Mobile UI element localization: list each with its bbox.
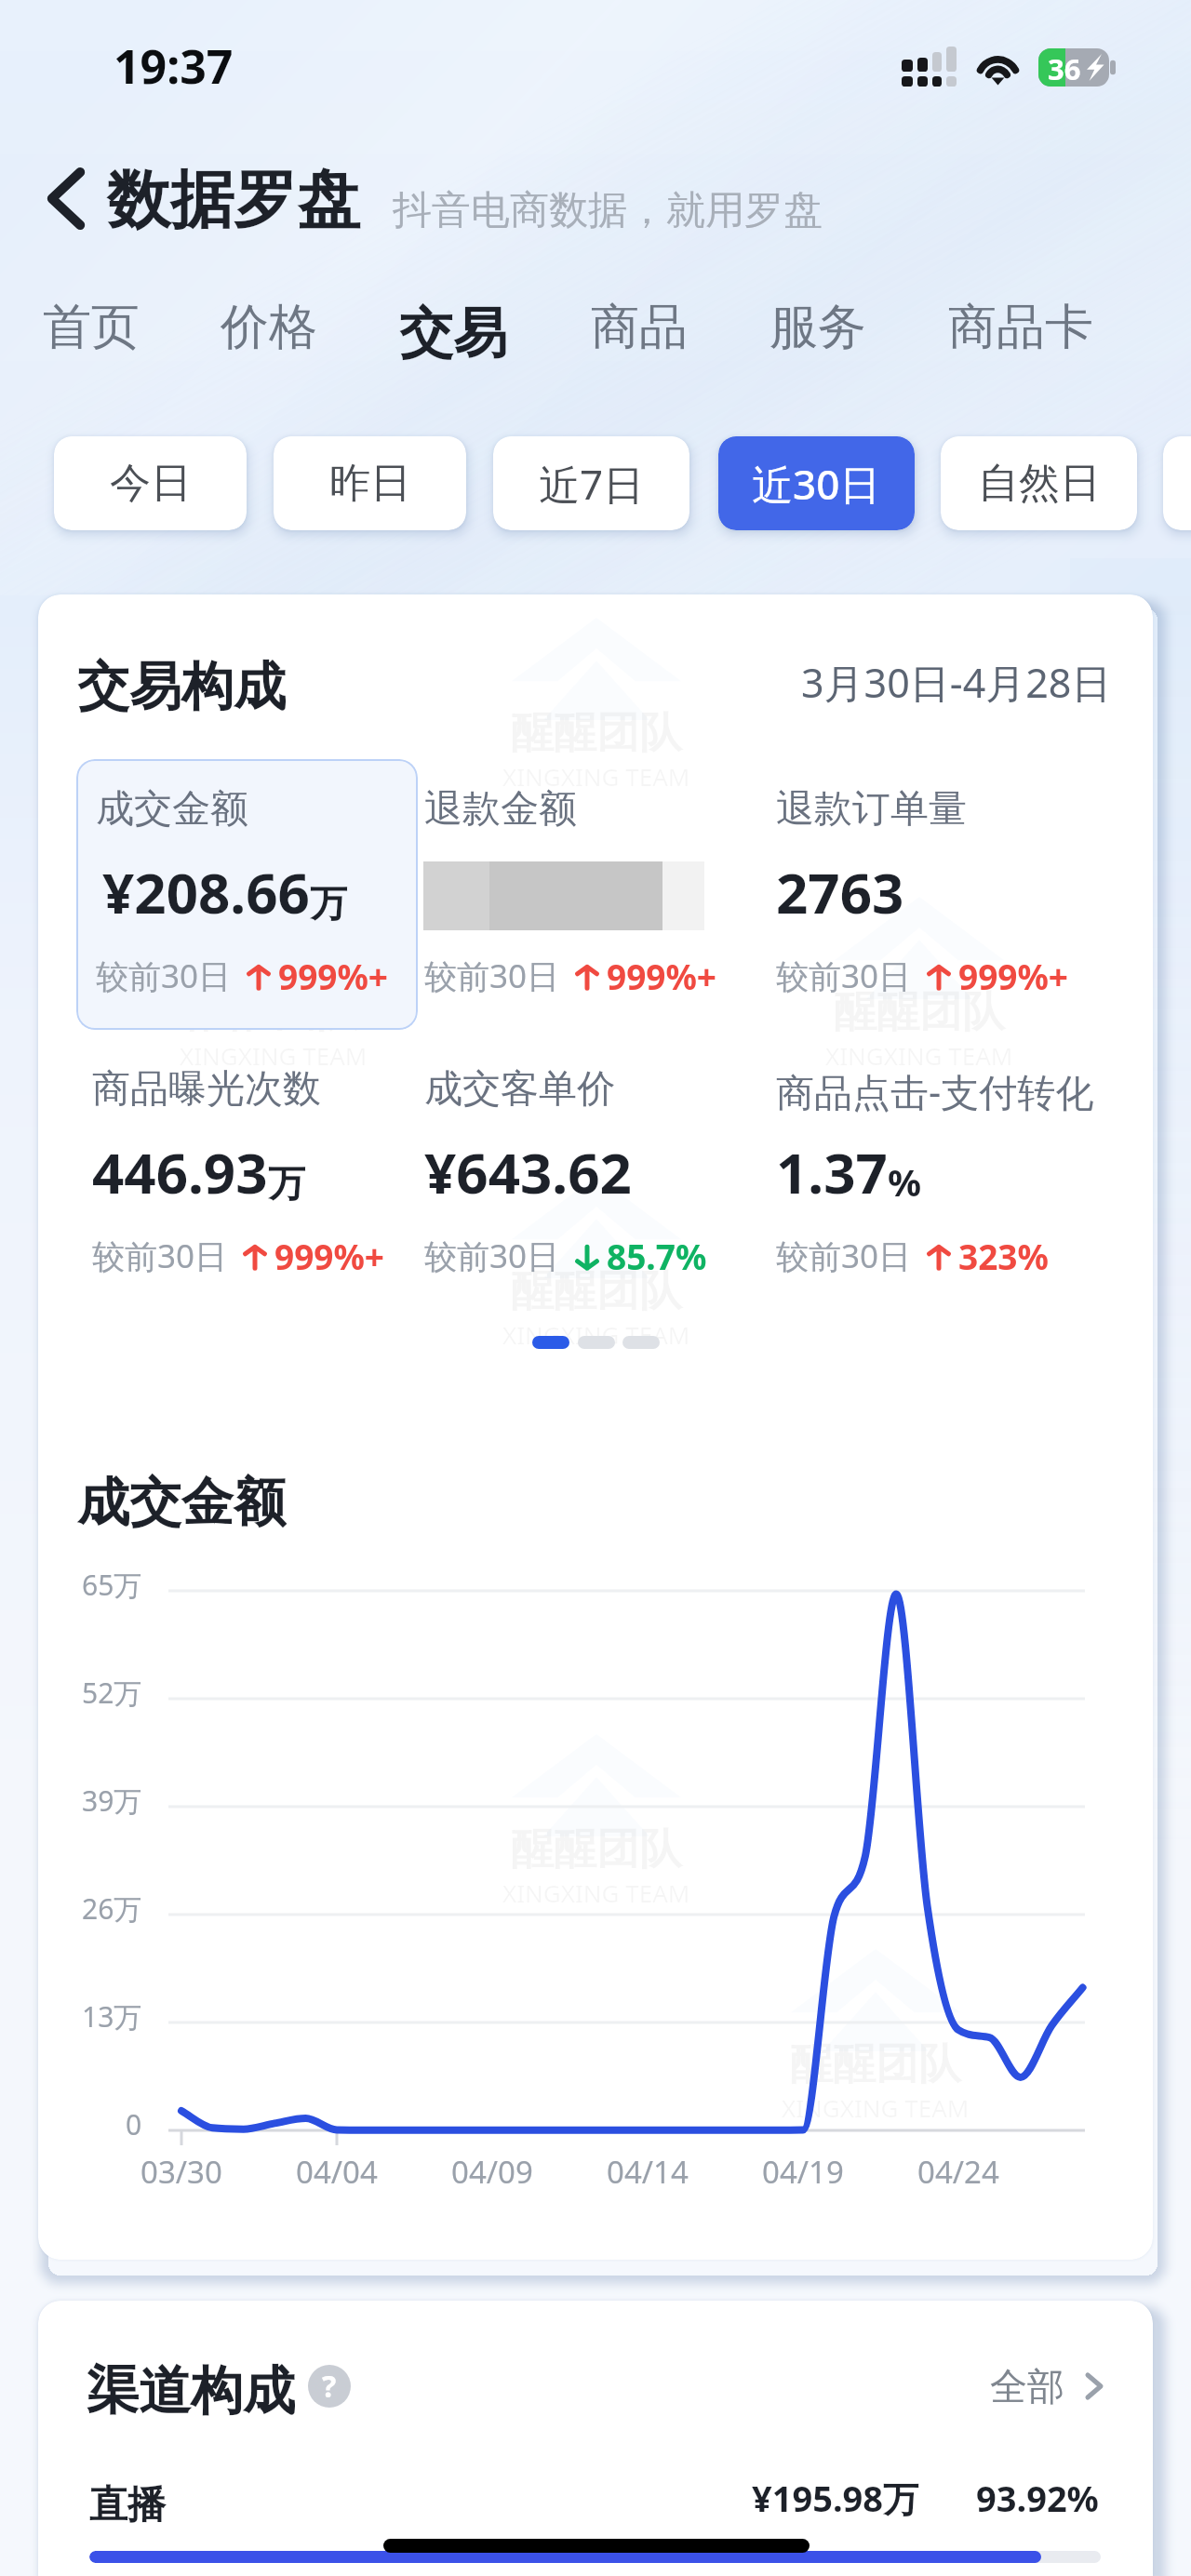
staticText: 2763	[776, 854, 904, 930]
staticText: 85.7%	[607, 1233, 707, 1279]
button[interactable]: 今日	[54, 436, 247, 530]
staticText: 商品曝光次数	[92, 1065, 321, 1114]
staticText: 999%+	[958, 953, 1069, 999]
staticText: 退款金额	[424, 785, 577, 834]
staticText: 渠道构成	[87, 2358, 295, 2424]
staticText: 较前30日	[424, 954, 560, 998]
staticText: 直播	[89, 2481, 166, 2529]
staticText: 价格	[221, 297, 317, 358]
staticText: 52万	[82, 1674, 142, 1712]
staticText: 04/04	[296, 2151, 378, 2193]
staticText: 323%	[958, 1233, 1049, 1279]
staticText: 交易	[399, 300, 507, 367]
staticText: 999%+	[274, 1233, 385, 1279]
button[interactable]: 交易	[399, 300, 507, 367]
staticText: 较前30日	[96, 954, 232, 998]
button[interactable]: 服务	[769, 297, 866, 358]
staticText: 13万	[82, 1997, 142, 2035]
staticText: 醒醒团队	[511, 1822, 682, 1876]
staticText: 退款订单量	[776, 785, 967, 834]
staticText: XINGXING TEAM	[782, 2091, 970, 2124]
staticText: 商品点击-支付转化	[776, 1065, 1094, 1117]
staticText: 03/30	[141, 2151, 222, 2193]
staticText: 较前30日	[424, 1234, 560, 1278]
staticText: 39万	[82, 1782, 142, 1820]
button[interactable]: Back	[20, 152, 112, 245]
staticText: 醒醒团队	[834, 985, 1005, 1039]
button[interactable]: 商品卡	[948, 297, 1093, 358]
staticText: 醒醒团队	[511, 1264, 682, 1318]
staticText: 446.93	[92, 1134, 268, 1210]
button[interactable]: 近30日	[718, 436, 915, 530]
staticText: XINGXING TEAM	[180, 1039, 368, 1072]
staticText: 成交客单价	[424, 1065, 615, 1114]
button[interactable]: 自然日	[941, 436, 1137, 530]
staticText: 近7日	[539, 456, 645, 512]
staticText: %	[888, 1156, 922, 1207]
staticText: 服务	[769, 297, 866, 358]
staticText: XINGXING TEAM	[502, 760, 690, 793]
staticText: 今日	[110, 458, 192, 509]
staticText: 19:37	[114, 34, 234, 98]
button[interactable]: 近7日	[493, 436, 689, 530]
staticText: 65万	[82, 1566, 142, 1604]
staticText: XINGXING TEAM	[502, 1876, 690, 1909]
staticText: ?	[322, 2366, 337, 2407]
staticText: 商品卡	[948, 297, 1093, 358]
staticText: 04/24	[917, 2151, 999, 2193]
staticText: 0	[126, 2105, 142, 2143]
button[interactable]: 退款订单量	[776, 785, 1120, 1018]
button[interactable]	[76, 759, 418, 1030]
staticText: 全部	[990, 2363, 1064, 2409]
staticText: 昨日	[329, 458, 411, 509]
staticText: 较前30日	[776, 954, 912, 998]
button[interactable]: 价格	[221, 297, 317, 358]
staticText: 近30日	[752, 456, 881, 512]
staticText: 自然日	[978, 458, 1101, 509]
staticText: 数据罗盘	[107, 161, 360, 241]
staticText: 醒醒团队	[511, 706, 682, 760]
button[interactable]: 全部	[990, 2363, 1104, 2409]
button[interactable]: 退款金额	[424, 785, 769, 1018]
button[interactable]: 成交客单价	[424, 1065, 769, 1298]
button[interactable]: 商品点击-支付转化	[776, 1065, 1120, 1298]
staticText: 26万	[82, 1889, 142, 1928]
button[interactable]: 商品曝光次数	[92, 1065, 436, 1298]
staticText: 较前30日	[776, 1234, 912, 1278]
staticText: 04/19	[762, 2151, 844, 2193]
staticText: 04/14	[607, 2151, 689, 2193]
button[interactable]	[1163, 436, 1191, 530]
button[interactable]: 首页	[43, 297, 140, 358]
button[interactable]: 成交金额	[96, 785, 440, 1018]
staticText: 3月30日-4月28日	[801, 655, 1112, 710]
staticText: XINGXING TEAM	[825, 1039, 1013, 1072]
staticText: ¥208.66	[102, 854, 310, 930]
staticText: 醒醒团队	[790, 2037, 961, 2091]
staticText: 万	[268, 1160, 305, 1207]
staticText: 04/09	[451, 2151, 533, 2193]
staticText: 93.92%	[976, 2474, 1099, 2522]
staticText: 1.37	[776, 1134, 888, 1210]
staticText: 抖音电商数据，就用罗盘	[393, 186, 823, 235]
staticText: 万	[310, 880, 347, 927]
staticText: 成交金额	[96, 785, 248, 834]
staticText: 交易构成	[77, 654, 286, 720]
staticText: 醒醒团队	[188, 985, 359, 1039]
staticText: 首页	[43, 297, 140, 358]
staticText: 999%+	[278, 953, 389, 999]
button[interactable]: 昨日	[274, 436, 466, 530]
staticText: ¥643.62	[424, 1134, 632, 1210]
staticText: 999%+	[607, 953, 717, 999]
staticText: ¥195.98万	[752, 2474, 919, 2522]
button[interactable]: 商品	[591, 297, 688, 358]
staticText: 成交金额	[77, 1470, 286, 1536]
staticText: XINGXING TEAM	[502, 1318, 690, 1351]
button[interactable]: Help	[308, 2365, 351, 2408]
staticText: 36	[1048, 49, 1081, 87]
staticText: 较前30日	[92, 1234, 228, 1278]
staticText: 商品	[591, 297, 688, 358]
